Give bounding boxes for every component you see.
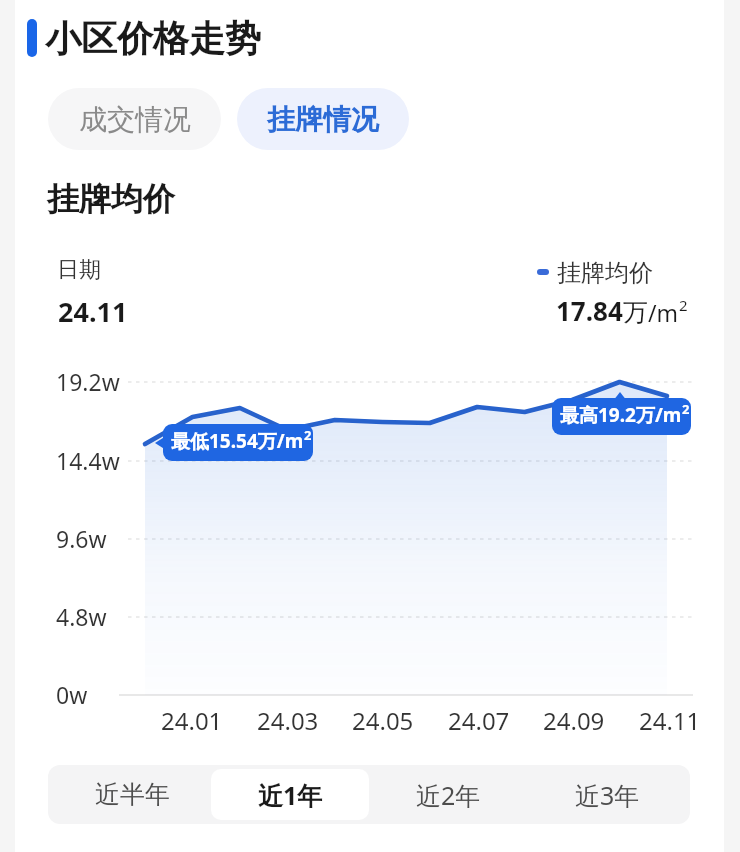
staticText: 19.2w <box>56 366 120 397</box>
staticText: /m <box>648 297 679 328</box>
staticText: 24.05 <box>352 704 414 737</box>
staticText: 24.11 <box>58 293 128 330</box>
button[interactable]: 近1年 <box>211 765 369 824</box>
staticText: 24.09 <box>543 704 605 737</box>
staticText: 0w <box>56 679 88 710</box>
staticText: 挂牌均价 <box>47 179 175 219</box>
staticText: 近1年 <box>258 778 323 812</box>
button[interactable]: 成交情况 <box>48 88 221 150</box>
staticText: 24.07 <box>448 704 510 737</box>
staticText: 24.11 <box>639 704 701 737</box>
button[interactable]: 近半年 <box>53 765 211 824</box>
staticText: 挂牌情况 <box>267 102 379 137</box>
staticText: 挂牌均价 <box>557 258 653 288</box>
staticText: 最低15.54万/m <box>171 428 304 454</box>
staticText: 17.84 <box>556 293 623 328</box>
staticText: 近2年 <box>416 778 481 812</box>
button[interactable]: 近2年 <box>369 765 528 824</box>
staticText: 近3年 <box>575 778 640 812</box>
staticText: 24.01 <box>161 704 223 737</box>
staticText: 2 <box>682 400 690 418</box>
staticText: 14.4w <box>56 445 120 476</box>
staticText: 2 <box>679 295 688 315</box>
staticText: 成交情况 <box>79 102 191 137</box>
staticText: 24.03 <box>257 704 319 737</box>
staticText: 近半年 <box>95 779 170 810</box>
staticText: 万 <box>623 297 648 328</box>
staticText: 2 <box>304 426 312 444</box>
staticText: 9.6w <box>56 523 107 554</box>
staticText: 小区价格走势 <box>45 16 261 61</box>
staticText: 日期 <box>57 256 101 284</box>
button[interactable]: 挂牌情况 <box>237 88 409 150</box>
staticText: 4.8w <box>56 601 107 632</box>
staticText: 最高19.2万/m <box>560 402 682 428</box>
button[interactable]: 近3年 <box>528 765 687 824</box>
